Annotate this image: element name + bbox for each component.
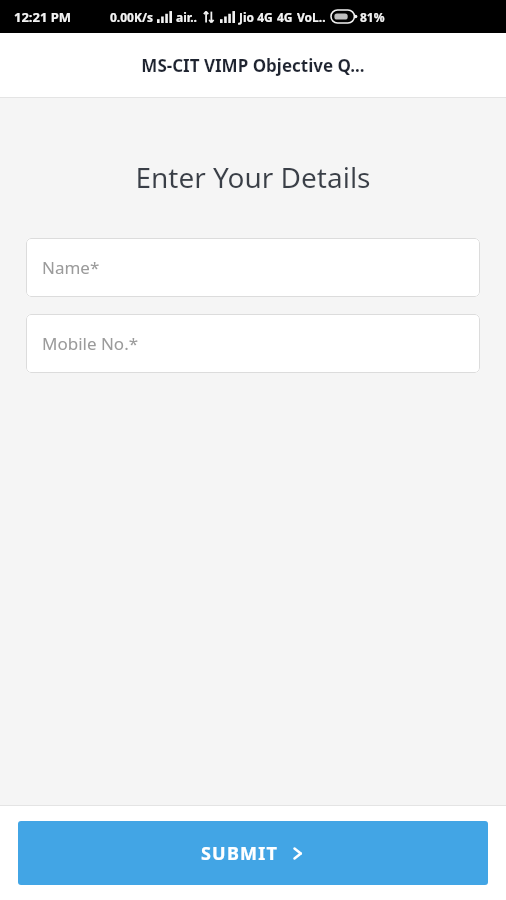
staticText: 4G [277,9,293,25]
staticText: SUBMIT [201,841,279,866]
button[interactable]: Name* [26,238,480,297]
staticText: MS-CIT VIMP Objective Q... [141,54,365,77]
staticText: 81% [360,9,385,25]
staticText: 12:21 PM [14,8,72,26]
staticText: VoL.. [297,9,326,25]
staticText: Jio 4G [239,9,273,25]
staticText: Mobile No.* [42,332,139,355]
button[interactable]: SUBMIT [18,821,488,885]
staticText: Enter Your Details [0,158,506,196]
staticText: 0.00K/s [110,9,153,25]
button[interactable]: Mobile No.* [26,314,480,373]
staticText: Name* [42,256,100,279]
staticText: air.. [176,9,197,25]
